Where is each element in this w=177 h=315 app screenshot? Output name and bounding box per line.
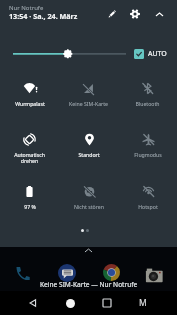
button[interactable]: Flugmodus <box>118 131 177 173</box>
button[interactable]: Einstellungen <box>126 5 144 23</box>
staticText: Automatisch drehen <box>14 151 45 164</box>
staticText: Nur Notrufe <box>9 4 44 12</box>
button[interactable]: Bluetooth <box>118 80 177 122</box>
button[interactable]: Startbildschirm <box>60 293 80 313</box>
button[interactable]: AUTO <box>134 48 167 59</box>
staticText: Hotspot <box>138 203 158 210</box>
button[interactable]: Tastatur wechseln <box>133 293 153 313</box>
button[interactable]: Nachrichten <box>56 262 77 283</box>
staticText: M <box>139 297 147 309</box>
staticText: AUTO <box>148 49 167 59</box>
button[interactable]: Ausklappen <box>80 242 97 259</box>
staticText: Bluetooth <box>135 100 160 107</box>
staticText: 13:54 · Sa., 24. März <box>9 11 78 21</box>
button[interactable]: Hotspot <box>118 183 177 225</box>
button[interactable]: Telefon <box>12 262 33 283</box>
button[interactable]: Automatisch drehen <box>0 131 59 173</box>
button[interactable]: Nicht stören <box>59 183 118 225</box>
button[interactable]: Helligkeit <box>9 45 130 62</box>
button[interactable]: Keine SIM-Karte <box>59 80 118 122</box>
button[interactable]: Einklappen <box>150 5 168 23</box>
button[interactable]: Bearbeiten <box>103 5 121 23</box>
button[interactable]: Kamera <box>143 263 164 284</box>
staticText: Nicht stören <box>74 203 104 210</box>
button[interactable]: Standort <box>59 131 118 173</box>
staticText: Flugmodus <box>134 151 162 158</box>
staticText: Standort <box>78 151 100 158</box>
staticText: Keine SIM-Karte <box>69 100 108 107</box>
button[interactable]: Wurmpalast <box>0 80 59 122</box>
button[interactable]: Zurück <box>23 293 43 313</box>
button[interactable]: Chrome <box>101 262 122 283</box>
staticText: 97 % <box>24 203 36 210</box>
staticText: Keine SIM-Karte — Nur Notrufe <box>40 280 138 289</box>
staticText: Wurmpalast <box>15 100 45 107</box>
button[interactable]: 97 % <box>0 183 59 225</box>
button[interactable]: Übersicht <box>97 293 117 313</box>
